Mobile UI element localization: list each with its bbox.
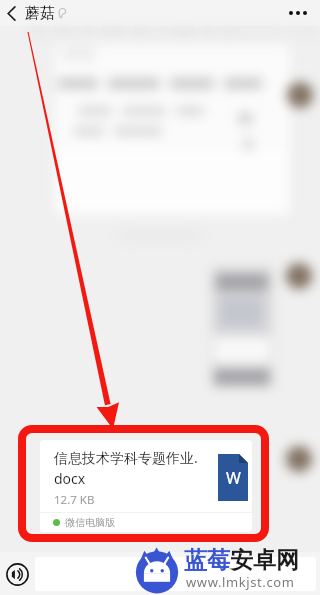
button[interactable]: Voice input — [2, 559, 32, 589]
staticText: 蘑菇 — [25, 4, 55, 23]
staticText: 12.7 KB — [54, 492, 95, 508]
staticText: 安卓网 — [230, 546, 299, 575]
button[interactable]: 信息技术学科专题作业. docx — [40, 440, 252, 532]
staticText: W — [226, 467, 241, 489]
button[interactable]: Back — [0, 0, 22, 26]
button[interactable] — [35, 557, 316, 591]
staticText: 微信电脑版 — [65, 516, 115, 529]
staticText: www.lmkjst.com — [186, 573, 295, 591]
button[interactable]: More options — [281, 0, 315, 26]
staticText: 信息技术学科专题作业. docx — [54, 448, 198, 489]
staticText: 蓝莓 — [184, 546, 230, 575]
